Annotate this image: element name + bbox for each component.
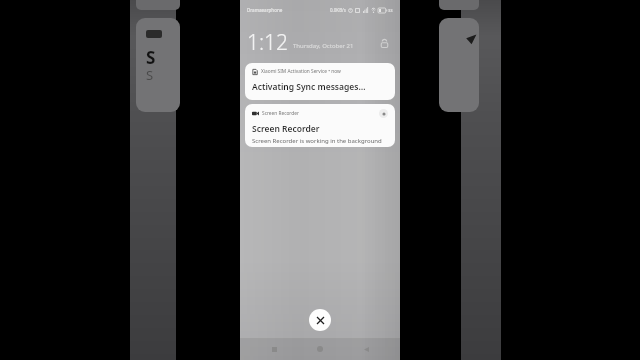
button[interactable]: Back	[357, 340, 375, 358]
staticText: Thursday, October 21	[293, 42, 354, 50]
staticText: Screen Recorder is working in the backgr…	[252, 137, 382, 145]
button[interactable]: Expand notification	[379, 109, 388, 118]
staticText: Screen Recorder	[262, 110, 299, 117]
button[interactable]: Home	[311, 340, 329, 358]
staticText: Activating Sync messages…	[252, 81, 366, 93]
button[interactable]: Xiaomi SIM Activation Service • now	[245, 63, 395, 100]
button[interactable]: Recents	[265, 340, 283, 358]
staticText: Dramaearphone	[247, 7, 283, 13]
button[interactable]: Screen Recorder	[245, 104, 395, 147]
staticText: 33	[388, 8, 393, 13]
staticText: Screen Recorder	[252, 123, 320, 135]
staticText: S	[146, 66, 154, 84]
button[interactable]: Lock	[377, 36, 391, 50]
staticText: S	[146, 46, 156, 69]
button[interactable]: Clear all notifications	[309, 309, 331, 331]
staticText: 1:12	[247, 28, 289, 57]
staticText: 0.0KB/s	[330, 7, 346, 13]
staticText: Xiaomi SIM Activation Service • now	[261, 68, 341, 75]
